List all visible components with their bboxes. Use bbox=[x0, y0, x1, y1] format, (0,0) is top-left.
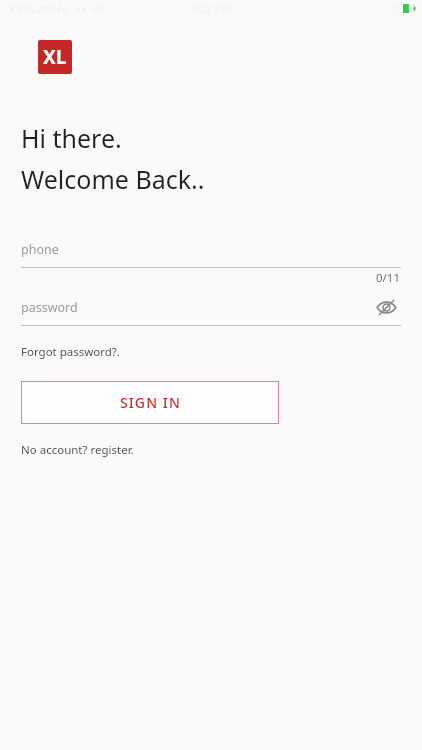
button[interactable]: password bbox=[21, 299, 401, 316]
button[interactable]: Forgot password?. bbox=[21, 344, 120, 360]
staticText: 0/11 bbox=[376, 270, 401, 286]
button[interactable]: Show password bbox=[371, 292, 401, 322]
staticText: phone bbox=[21, 241, 59, 258]
button[interactable]: SIGN IN bbox=[21, 381, 279, 424]
staticText: SIGN IN bbox=[120, 393, 181, 412]
staticText: Welcome Back.. bbox=[21, 162, 205, 196]
staticText: password bbox=[21, 299, 78, 316]
button[interactable]: No account? register. bbox=[21, 442, 134, 458]
button[interactable]: phone bbox=[21, 231, 401, 267]
staticText: XL bbox=[43, 44, 67, 70]
button[interactable]: XL bbox=[38, 40, 72, 74]
staticText: Hi there. bbox=[21, 121, 122, 155]
